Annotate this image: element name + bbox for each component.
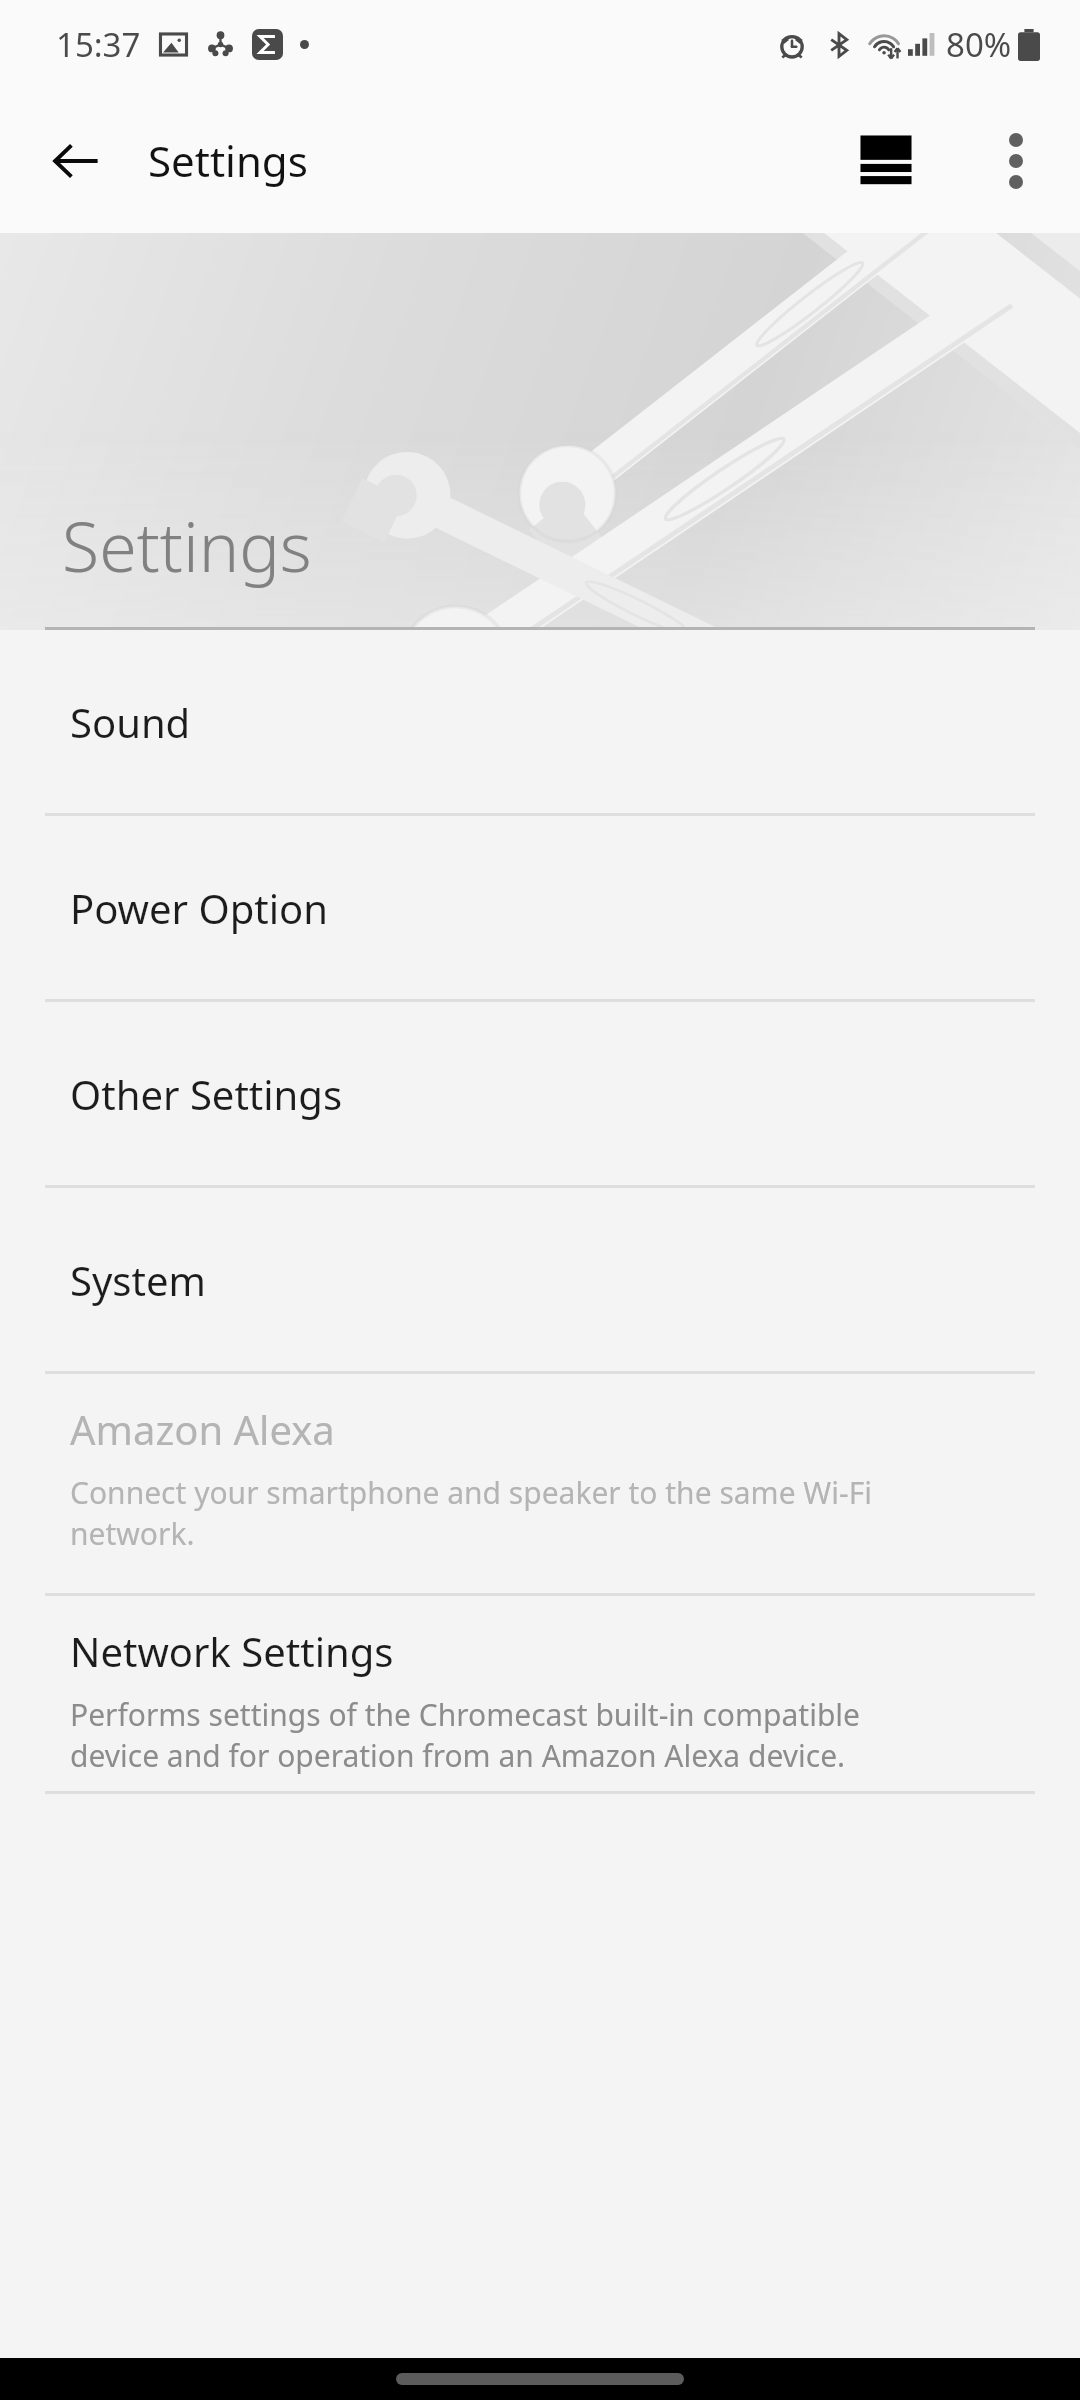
button[interactable]: Power Option [0, 816, 1080, 999]
staticText: Sound [70, 695, 191, 749]
button[interactable]: Sound [0, 630, 1080, 813]
button[interactable]: Back [38, 123, 114, 199]
button[interactable]: Other Settings [0, 1002, 1080, 1185]
staticText: Other Settings [70, 1067, 343, 1121]
staticText: Power Option [70, 881, 329, 935]
staticText: System [70, 1253, 206, 1307]
staticText: 15:37 [56, 22, 141, 67]
button[interactable]: System [0, 1188, 1080, 1371]
staticText: 80% [946, 22, 1012, 67]
staticText: Settings [62, 499, 312, 592]
button[interactable]: Amazon Alexa [0, 1374, 1080, 1593]
staticText: Performs settings of the Chromecast buil… [70, 1694, 860, 1776]
staticText: Settings [148, 132, 308, 189]
staticText: Network Settings [70, 1624, 394, 1678]
staticText: Amazon Alexa [70, 1402, 335, 1456]
staticText: Connect your smartphone and speaker to t… [70, 1472, 872, 1554]
button[interactable]: Play queue [844, 119, 928, 203]
button[interactable]: Network Settings [0, 1596, 1080, 1791]
button[interactable]: More options [974, 119, 1058, 203]
